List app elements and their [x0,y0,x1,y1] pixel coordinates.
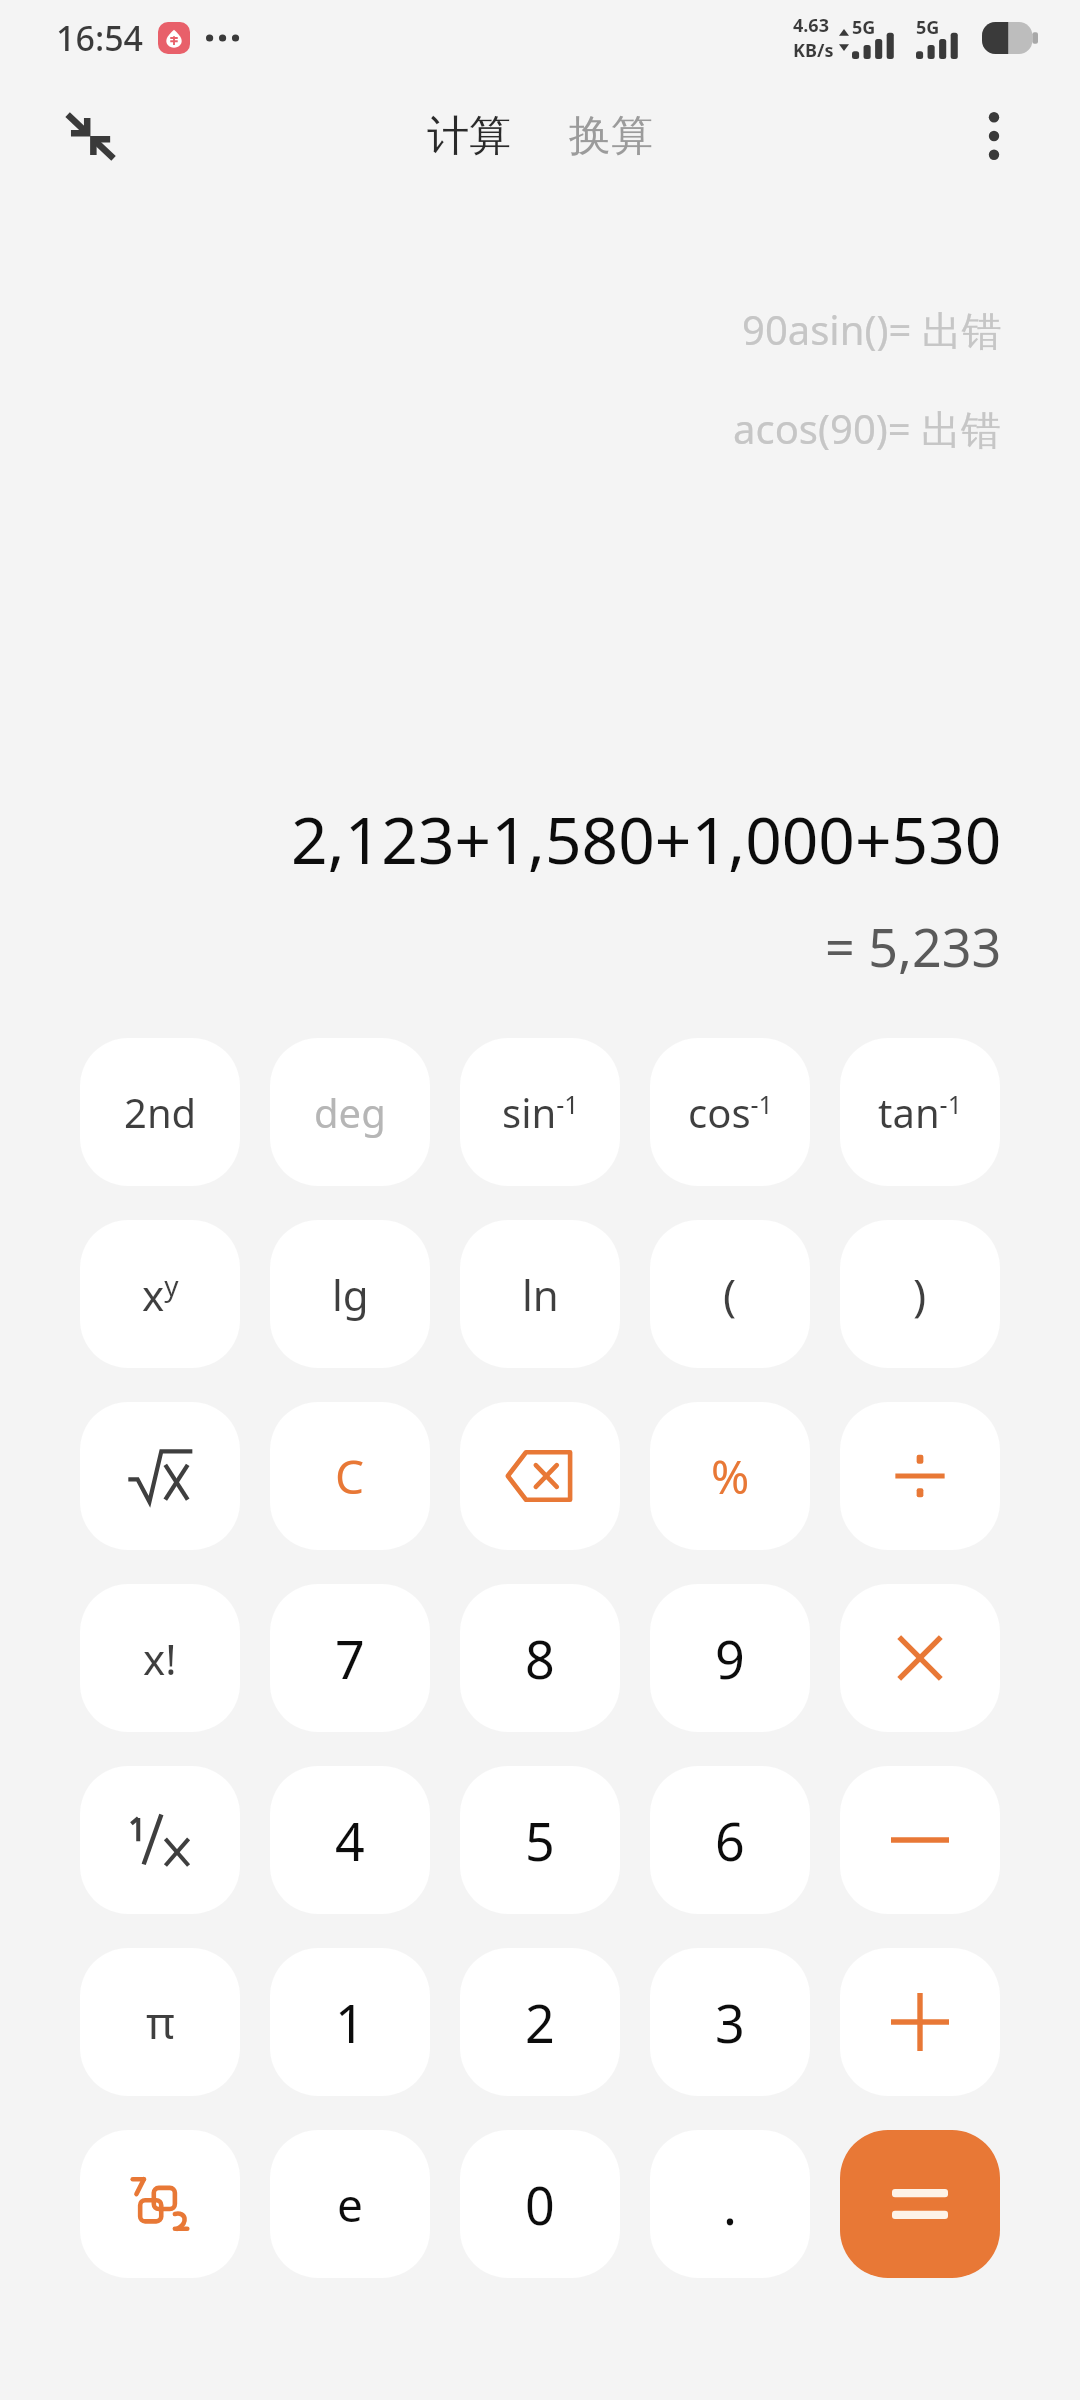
button[interactable]: 3 [650,1948,810,2096]
staticText: 7 [335,1623,365,1694]
staticText: π [146,1992,175,2052]
button[interactable]: square root [80,1402,240,1550]
staticText: 90asin()= 出错 [742,302,1002,357]
staticText: xy [142,1266,179,1323]
button[interactable]: unit convert [80,2130,240,2278]
staticText: 8 [525,1623,555,1694]
button[interactable]: lg [270,1220,430,1368]
button[interactable]: pi [80,1948,240,2096]
button[interactable]: ln [460,1220,620,1368]
staticText: sin-1 [502,1085,579,1139]
button[interactable]: 9 [650,1584,810,1732]
staticText: % [711,1445,750,1508]
button[interactable]: 6 [650,1766,810,1914]
button[interactable]: open parenthesis [650,1220,810,1368]
button[interactable]: deg [270,1038,430,1186]
staticText: deg [314,1085,386,1139]
button[interactable]: e [270,2130,430,2278]
button[interactable]: equals [840,2130,1000,2278]
staticText: ln [522,1266,559,1323]
staticText: 3 [715,1987,745,2058]
staticText: = 5,233 [825,911,1002,982]
button[interactable]: cos inverse [650,1038,810,1186]
staticText: 2,123+1,580+1,000+530 [291,796,1002,883]
button[interactable]: 2 [460,1948,620,2096]
button[interactable]: sin inverse [460,1038,620,1186]
staticText: KB/s [793,38,834,63]
staticText: ( [723,1264,737,1324]
staticText: tan-1 [878,1085,962,1139]
button[interactable]: backspace [460,1402,620,1550]
staticText: 4.63 [793,13,829,38]
staticText: 5G [852,15,876,40]
staticText: 6 [715,1805,745,1876]
staticText: 2 [525,1987,555,2058]
button[interactable]: 计算 [413,102,525,171]
button[interactable]: 8 [460,1584,620,1732]
button[interactable]: 5 [460,1766,620,1914]
staticText: . [723,2169,737,2240]
staticText: 计算 [427,110,511,163]
staticText: 2nd [124,1085,197,1139]
button[interactable]: 4 [270,1766,430,1914]
button[interactable]: x to the power y [80,1220,240,1368]
button[interactable]: decimal point [650,2130,810,2278]
staticText: ) [913,1264,927,1324]
staticText: 5G [916,15,940,40]
staticText: lg [332,1266,369,1323]
button[interactable]: multiply [840,1584,1000,1732]
button[interactable]: More options [952,94,1036,178]
button[interactable]: tan inverse [840,1038,1000,1186]
staticText: C [335,1445,365,1508]
button[interactable]: 2nd [80,1038,240,1186]
staticText: 4 [335,1805,365,1876]
button[interactable]: minus [840,1766,1000,1914]
button[interactable]: factorial [80,1584,240,1732]
staticText: 换算 [569,110,653,163]
button[interactable]: close parenthesis [840,1220,1000,1368]
staticText: e [337,2173,363,2236]
button[interactable]: plus [840,1948,1000,2096]
staticText: acos(90)= 出错 [733,401,1002,456]
button[interactable]: 换算 [555,102,667,171]
button[interactable]: 1 [270,1948,430,2096]
button[interactable]: 7 [270,1584,430,1732]
button[interactable]: Collapse [44,90,136,182]
staticText: 9 [715,1623,745,1694]
button[interactable]: clear [270,1402,430,1550]
staticText: 1 [335,1987,365,2058]
button[interactable]: percent [650,1402,810,1550]
button[interactable]: one over x [80,1766,240,1914]
staticText: 0 [525,2169,555,2240]
button[interactable]: 0 [460,2130,620,2278]
staticText: 5 [525,1805,555,1876]
button[interactable]: divide [840,1402,1000,1550]
staticText: cos-1 [688,1085,773,1139]
staticText: 16:54 [56,15,144,61]
staticText: x! [143,1630,177,1687]
